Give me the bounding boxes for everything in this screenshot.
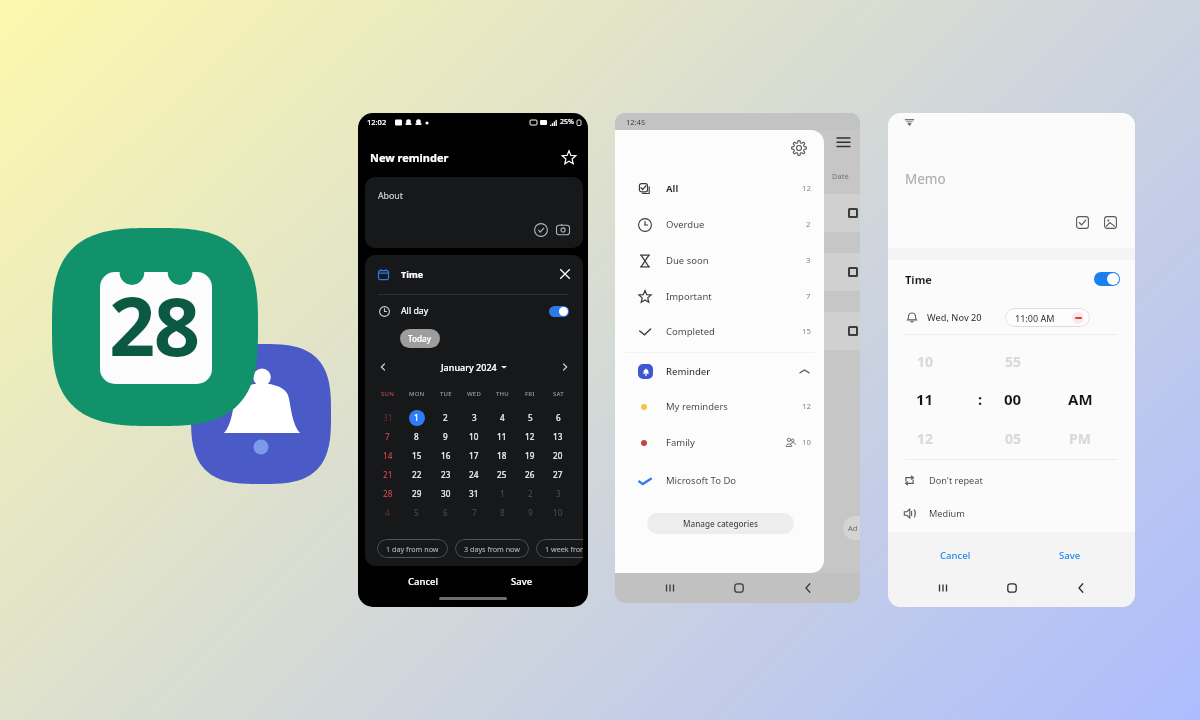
staticText: 11 [916,389,934,409]
button[interactable]: 5 [402,503,431,522]
button[interactable]: 20 [544,446,572,465]
button[interactable]: 21 [373,465,402,484]
button[interactable]: 14 [373,446,402,465]
staticText: 20 [553,450,563,461]
button[interactable]: 5 [516,408,544,427]
button[interactable]: Checklist [534,223,548,237]
button[interactable]: 11 [488,427,516,446]
button[interactable]: Important [615,284,824,309]
button[interactable] [1094,272,1120,286]
button[interactable]: Due soon [615,248,824,273]
button[interactable]: Reminder [615,359,824,384]
button[interactable]: All [615,176,824,201]
button[interactable]: 23 [431,465,460,484]
button[interactable]: Microsoft To Do [615,468,824,493]
button[interactable]: Back [1070,577,1092,599]
button[interactable]: Recents [932,577,954,599]
button[interactable]: 8 [488,503,516,522]
button[interactable]: 9 [516,503,544,522]
button[interactable]: January 2024 [441,361,507,373]
button[interactable]: Family [615,430,824,455]
button[interactable]: 28 [373,484,402,503]
button[interactable]: Add image [556,223,570,237]
button[interactable]: 16 [431,446,460,465]
button[interactable]: Don't repeat [888,469,1135,491]
staticText: 4 [500,412,505,423]
button[interactable]: Recents [659,577,681,599]
button[interactable]: 24 [460,465,488,484]
button[interactable]: Back [797,577,819,599]
staticText: 11 [497,431,507,442]
button[interactable]: 4 [373,503,402,522]
button[interactable]: 25 [488,465,516,484]
staticText: New reminder [370,150,449,165]
staticText: 55 [1005,352,1022,371]
staticText: 1 [414,412,419,423]
button[interactable]: 3 [460,408,488,427]
button[interactable]: 15 [402,446,431,465]
button[interactable]: 30 [431,484,460,503]
button[interactable]: Cancel [393,568,453,595]
button[interactable]: Checklist [1076,216,1089,229]
button[interactable]: 3 days from now [455,539,529,558]
button[interactable]: 13 [544,427,572,446]
button[interactable]: 27 [544,465,572,484]
button[interactable]: 1 [402,408,431,427]
button[interactable]: 31 [373,408,402,427]
button[interactable]: 26 [516,465,544,484]
staticText: Save [1059,549,1081,562]
button[interactable]: All day [365,299,583,323]
button[interactable]: 6 [544,408,572,427]
button[interactable]: 1 day from now [377,539,448,558]
button[interactable]: 11:00 AM [1005,308,1090,327]
button[interactable]: 9 [431,427,460,446]
staticText: 12:02 [367,117,387,127]
button[interactable]: Add image [1104,216,1117,229]
staticText: : [978,389,983,409]
button[interactable]: Next month [559,361,571,373]
button[interactable]: 7 [373,427,402,446]
button[interactable]: 10 [544,503,572,522]
button[interactable]: Today [400,329,440,348]
staticText: Save [511,575,533,588]
button[interactable]: 31 [460,484,488,503]
button[interactable]: My reminders [615,394,824,419]
button[interactable]: 10 [460,427,488,446]
button[interactable]: Favourite [561,150,577,166]
button[interactable]: 4 [488,408,516,427]
staticText: Today [408,333,432,344]
button[interactable]: 3 [544,484,572,503]
button[interactable]: Home [1001,577,1023,599]
button[interactable]: Medium [888,502,1135,524]
button[interactable]: 1 [488,484,516,503]
staticText: Time [905,272,932,287]
button[interactable]: 22 [402,465,431,484]
button[interactable]: Ad [843,516,860,540]
button[interactable]: 29 [402,484,431,503]
button[interactable]: 8 [402,427,431,446]
button[interactable]: Save [1050,545,1090,566]
button[interactable]: 7 [460,503,488,522]
button[interactable]: Cancel [933,545,978,566]
button[interactable]: Close [559,268,571,280]
button[interactable]: 6 [431,503,460,522]
button[interactable]: 17 [460,446,488,465]
button[interactable]: Menu [836,134,851,149]
button[interactable]: 2 [516,484,544,503]
button[interactable]: Settings [791,140,807,156]
staticText: 05 [1005,429,1022,448]
button[interactable]: 1 week from now [536,539,583,558]
button[interactable]: 2 [431,408,460,427]
button[interactable]: 19 [516,446,544,465]
button[interactable]: About [365,177,583,248]
staticText: 5 [414,507,419,518]
button[interactable]: Save [497,568,547,595]
button[interactable]: Completed [615,319,824,344]
button[interactable]: Home [728,577,750,599]
button[interactable]: 12 [516,427,544,446]
button[interactable]: 18 [488,446,516,465]
button[interactable]: Overdue [615,212,824,237]
staticText: 13 [553,431,563,442]
button[interactable]: Manage categories [647,513,794,534]
button[interactable]: Previous month [377,361,389,373]
